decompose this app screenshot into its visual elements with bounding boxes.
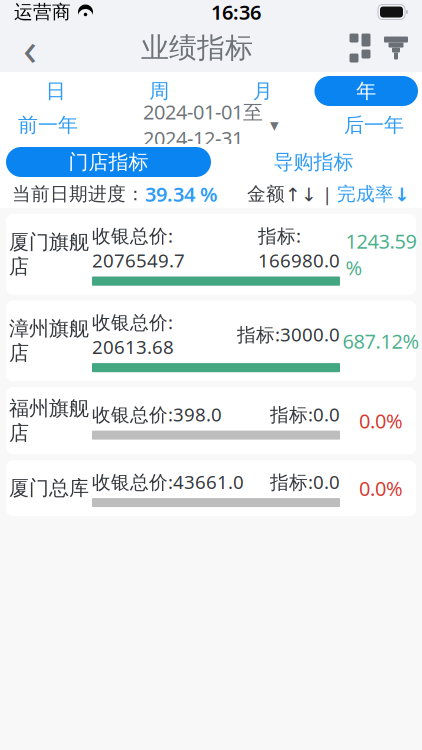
staticText: 厦门旗舰店 xyxy=(9,230,89,279)
staticText: 1243.59% xyxy=(345,228,416,281)
staticText: 0.0% xyxy=(359,475,403,501)
staticText: 门店指标 xyxy=(68,150,148,174)
staticText: 金额↑↓ xyxy=(247,182,317,205)
staticText: 业绩指标 xyxy=(141,31,253,65)
staticText: 收银总价:43661.0 xyxy=(92,469,244,494)
button[interactable]: 金额↑↓ xyxy=(247,182,317,205)
staticText: 收银总价:2076549.7 xyxy=(92,223,185,273)
button[interactable]: 前一年 xyxy=(4,110,92,140)
staticText: 指标:0.0 xyxy=(270,402,340,427)
staticText: 周 xyxy=(149,79,169,103)
staticText: 收银总价:398.0 xyxy=(92,402,222,427)
staticText: 福州旗舰店 xyxy=(9,396,89,445)
staticText: 指标:3000.0 xyxy=(237,322,340,347)
button[interactable]: 厦门总库 xyxy=(6,460,416,516)
staticText: 指标:0.0 xyxy=(270,469,340,494)
staticText: 指标:166980.0 xyxy=(258,223,340,273)
button[interactable]: Layout xyxy=(342,26,378,70)
button[interactable]: 周 xyxy=(107,76,211,106)
staticText: 后一年 xyxy=(344,113,404,137)
staticText: 厦门总库 xyxy=(9,476,89,500)
staticText: 导购指标 xyxy=(273,150,353,174)
button[interactable]: 年 xyxy=(314,76,418,106)
button[interactable]: 完成率↓ xyxy=(337,182,410,205)
button[interactable]: Back xyxy=(8,26,52,70)
staticText: 运营商 xyxy=(14,0,71,23)
button[interactable]: 导购指标 xyxy=(211,147,416,177)
staticText: 687.12% xyxy=(342,328,419,354)
button[interactable]: 门店指标 xyxy=(6,147,211,177)
staticText: 39.34 % xyxy=(145,181,218,207)
staticText: ▾ xyxy=(270,115,279,135)
staticText: 完成率↓ xyxy=(337,182,410,205)
staticText: 月 xyxy=(253,79,273,103)
staticText: 前一年 xyxy=(18,113,78,137)
button[interactable]: 月 xyxy=(211,76,314,106)
staticText: 2024-01-01至2024-12-31 xyxy=(143,98,263,151)
button[interactable]: 2024-01-01至2024-12-31 xyxy=(143,110,279,140)
button[interactable]: 福州旗舰店 xyxy=(6,387,416,454)
staticText: 当前日期进度： xyxy=(12,182,145,205)
staticText: 年 xyxy=(356,79,376,103)
staticText: 日 xyxy=(46,79,66,103)
staticText: ‹ xyxy=(23,18,37,78)
staticText: 收银总价:20613.68 xyxy=(92,310,174,359)
button[interactable]: 后一年 xyxy=(330,110,418,140)
staticText: | xyxy=(317,182,337,206)
button[interactable]: 日 xyxy=(4,76,107,106)
staticText: 0.0% xyxy=(359,407,403,434)
button[interactable]: Filter xyxy=(378,26,414,70)
staticText: 16:36 xyxy=(211,0,261,25)
button[interactable]: 漳州旗舰店 xyxy=(6,301,416,381)
staticText: 漳州旗舰店 xyxy=(9,316,89,365)
button[interactable]: 厦门旗舰店 xyxy=(6,214,416,295)
